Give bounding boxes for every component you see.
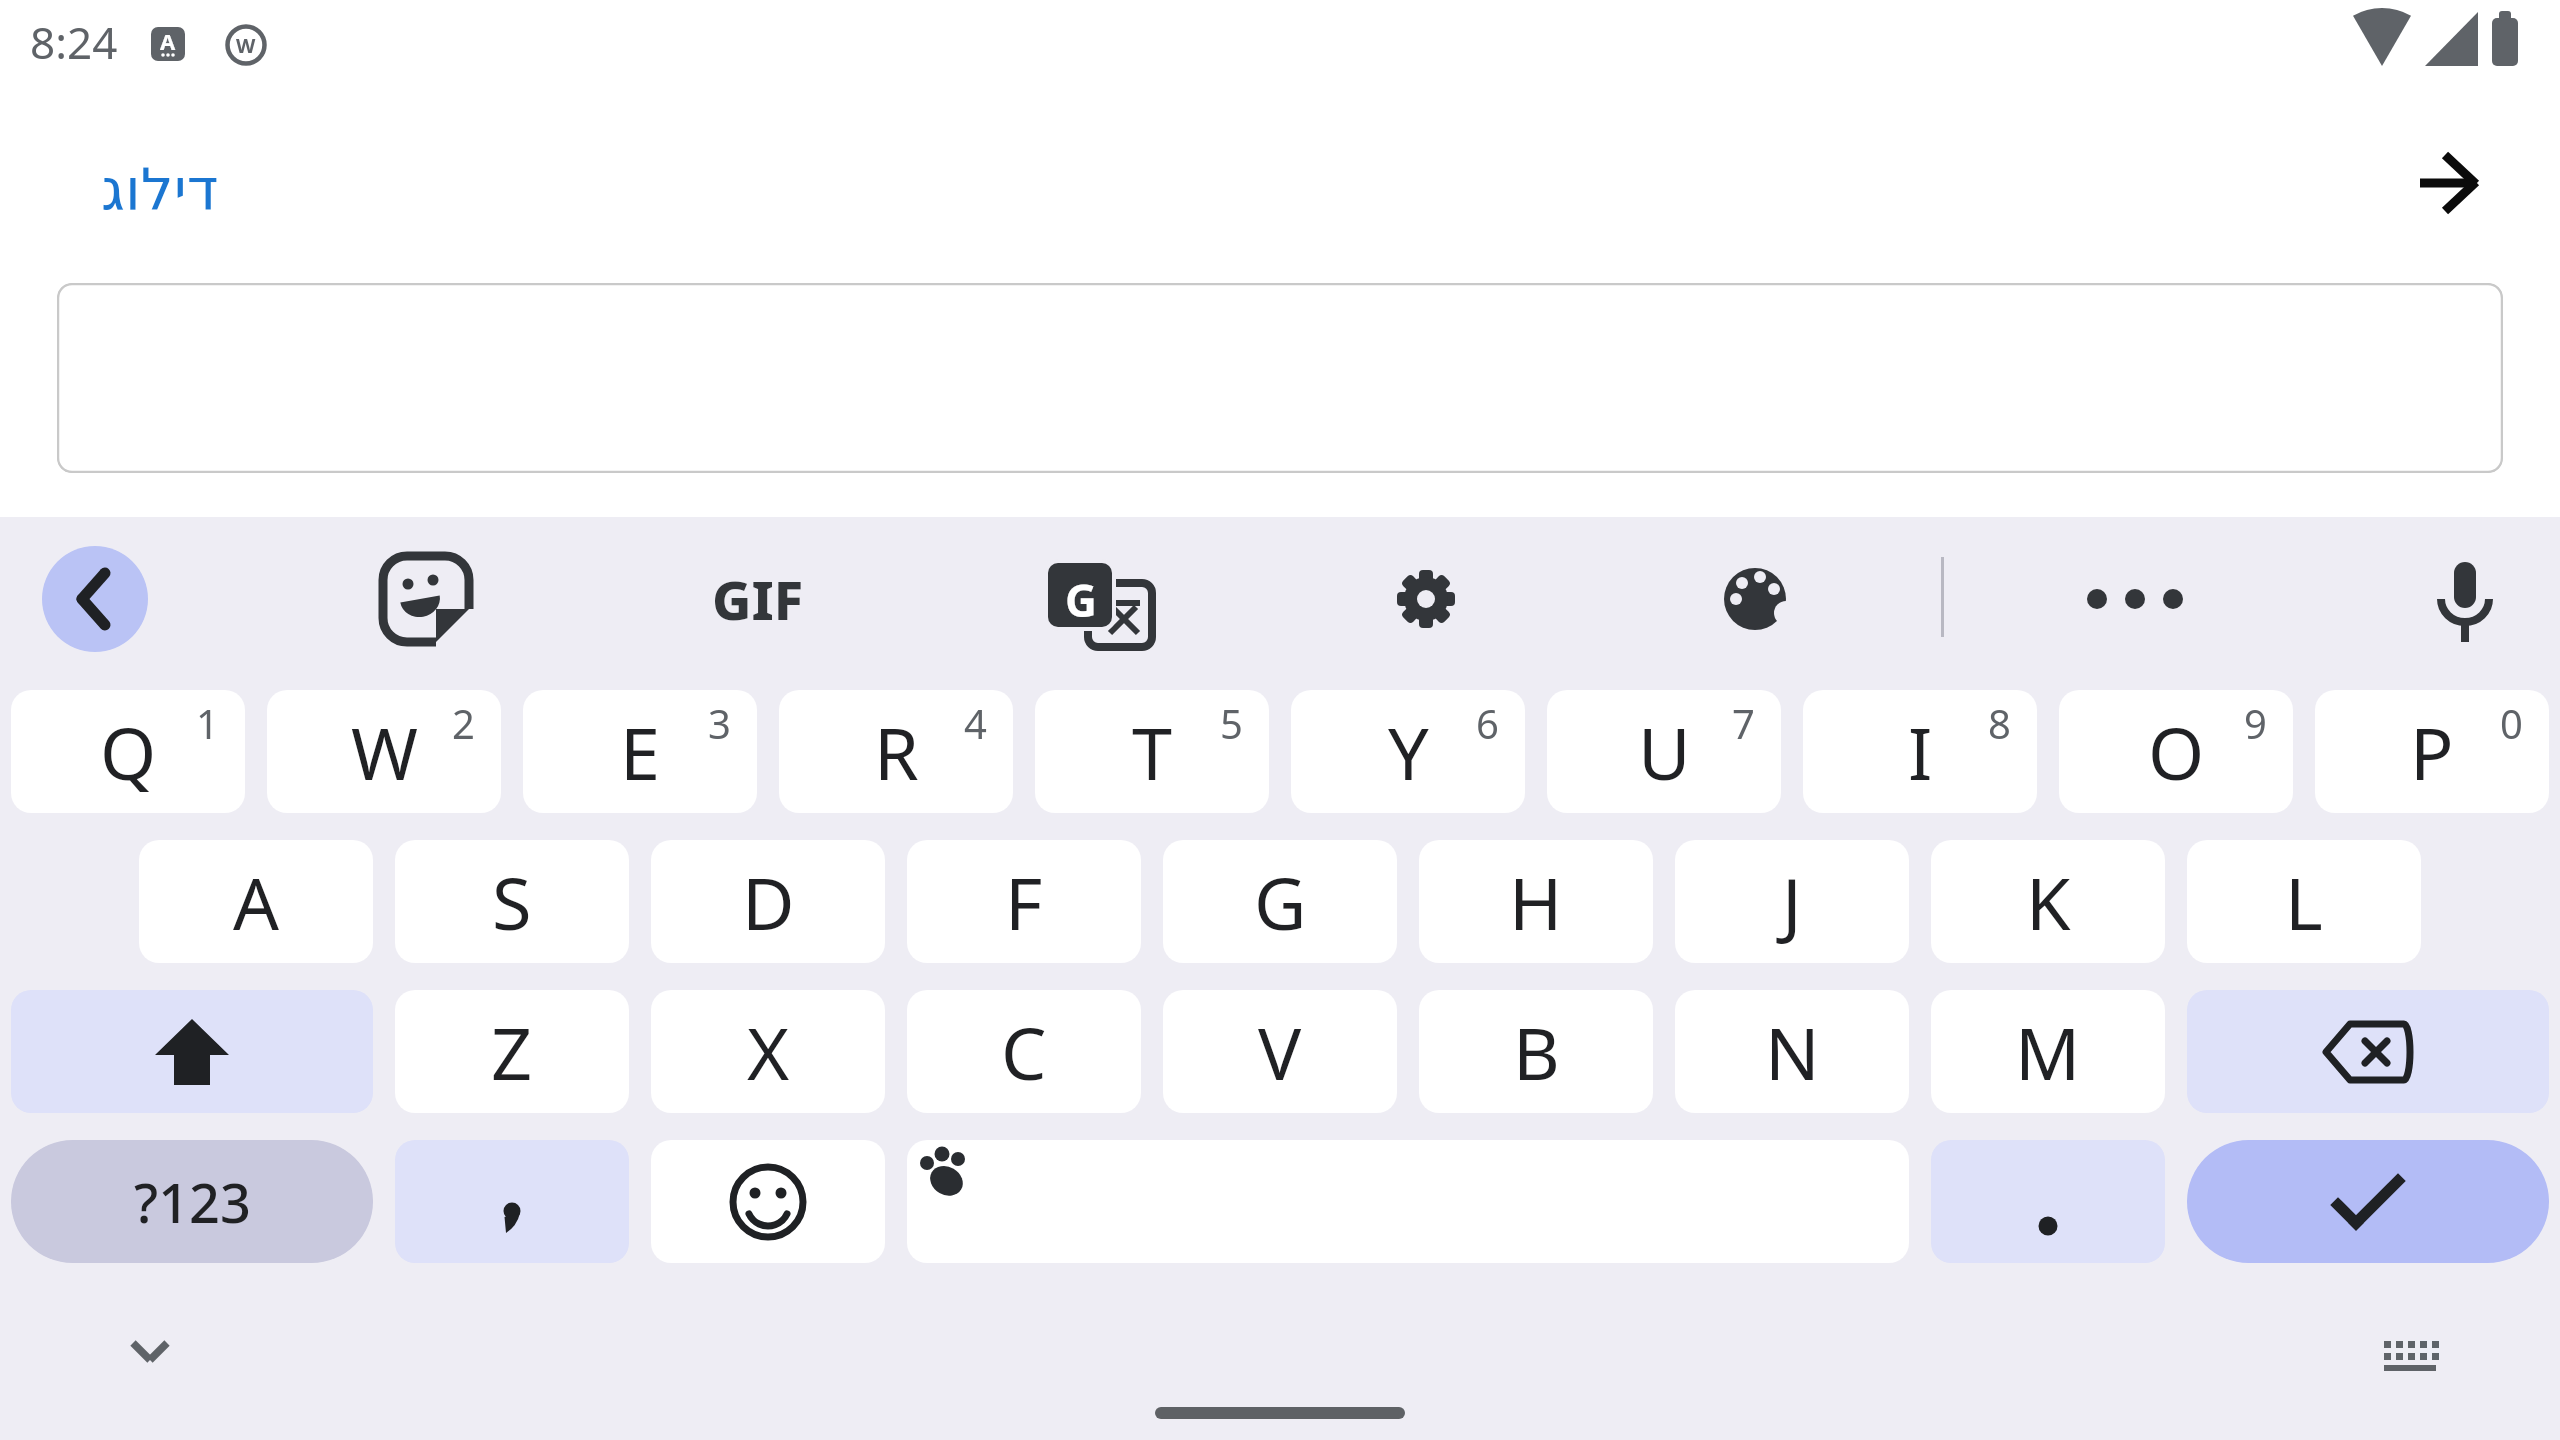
staticText: 4 xyxy=(964,696,987,750)
button[interactable]: A xyxy=(139,840,373,963)
staticText: A xyxy=(233,853,280,951)
staticText: 1 xyxy=(196,696,219,750)
button[interactable]: C xyxy=(907,990,1141,1113)
button[interactable]: X xyxy=(651,990,885,1113)
staticText: L xyxy=(2285,853,2323,951)
button[interactable] xyxy=(2187,990,2549,1113)
button[interactable]: L xyxy=(2187,840,2421,963)
button[interactable]: P xyxy=(2315,690,2549,813)
staticText: 7 xyxy=(1732,696,1755,750)
button[interactable]: S xyxy=(395,840,629,963)
button[interactable]: B xyxy=(1419,990,1653,1113)
button[interactable]: M xyxy=(1931,990,2165,1113)
staticText: O xyxy=(2148,703,2205,801)
staticText: 2 xyxy=(452,696,475,750)
staticText: F xyxy=(1005,853,1043,951)
staticText: M xyxy=(2015,1003,2081,1101)
button[interactable]: U xyxy=(1547,690,1781,813)
staticText: J xyxy=(1782,853,1802,951)
staticText: 9 xyxy=(2244,696,2267,750)
button[interactable]: J xyxy=(1675,840,1909,963)
staticText: 8 xyxy=(1988,696,2011,750)
button[interactable]: T xyxy=(1035,690,1269,813)
staticText: K xyxy=(2026,853,2071,951)
button[interactable] xyxy=(378,551,474,647)
button[interactable] xyxy=(2428,558,2502,658)
button[interactable] xyxy=(907,1140,1909,1263)
button[interactable] xyxy=(42,546,148,652)
staticText: W xyxy=(351,703,418,801)
staticText: R xyxy=(874,703,919,801)
button[interactable]: G xyxy=(1048,563,1158,653)
button[interactable]: O xyxy=(2059,690,2293,813)
staticText: N xyxy=(1765,1003,1820,1101)
staticText: Y xyxy=(1388,703,1429,801)
staticText: 0 xyxy=(2500,696,2523,750)
staticText: 5 xyxy=(1220,696,1243,750)
button[interactable]: K xyxy=(1931,840,2165,963)
button[interactable]: GIF xyxy=(700,554,815,644)
button[interactable]: I xyxy=(1803,690,2037,813)
staticText: ?123 xyxy=(134,1165,251,1239)
button[interactable] xyxy=(1931,1140,2165,1263)
button[interactable] xyxy=(11,990,373,1113)
staticText: U xyxy=(1638,703,1691,801)
button[interactable] xyxy=(105,1315,195,1405)
button[interactable]: H xyxy=(1419,840,1653,963)
staticText: 6 xyxy=(1476,696,1499,750)
button[interactable]: Z xyxy=(395,990,629,1113)
button[interactable]: Y xyxy=(1291,690,1525,813)
button[interactable] xyxy=(2187,1140,2549,1263)
button[interactable] xyxy=(1394,567,1458,631)
staticText: T xyxy=(1132,703,1173,801)
button[interactable]: W xyxy=(267,690,501,813)
button[interactable]: R xyxy=(779,690,1013,813)
staticText: G xyxy=(1065,570,1097,630)
button[interactable]: ?123 xyxy=(11,1140,373,1263)
button[interactable]: F xyxy=(907,840,1141,963)
button[interactable] xyxy=(1722,565,1792,633)
staticText: W xyxy=(236,32,256,59)
button[interactable]: D xyxy=(651,840,885,963)
staticText: A xyxy=(160,27,176,56)
button[interactable]: V xyxy=(1163,990,1397,1113)
staticText: GIF xyxy=(712,562,804,636)
button[interactable] xyxy=(2080,569,2190,629)
button[interactable] xyxy=(651,1140,885,1263)
button[interactable] xyxy=(2395,130,2505,240)
staticText: P xyxy=(2410,703,2454,801)
button[interactable]: N xyxy=(1675,990,1909,1113)
staticText: X xyxy=(747,1003,790,1101)
button[interactable]: דילוג xyxy=(70,140,250,240)
staticText: 8:24 xyxy=(30,12,118,72)
staticText: C xyxy=(1001,1003,1047,1101)
staticText: 3 xyxy=(708,696,731,750)
staticText: I xyxy=(1908,703,1933,801)
button[interactable]: G xyxy=(1163,840,1397,963)
staticText: B xyxy=(1513,1003,1560,1101)
staticText: E xyxy=(620,703,661,801)
staticText: V xyxy=(1258,1003,1302,1101)
staticText: G xyxy=(1254,853,1307,951)
staticText: דילוג xyxy=(101,156,219,224)
button[interactable] xyxy=(395,1140,629,1263)
staticText: Q xyxy=(100,703,157,801)
button[interactable] xyxy=(57,283,2503,473)
staticText: H xyxy=(1509,853,1563,951)
button[interactable]: Q xyxy=(11,690,245,813)
staticText: Z xyxy=(491,1003,533,1101)
button[interactable] xyxy=(2370,1315,2454,1399)
staticText: D xyxy=(742,853,795,951)
staticText: S xyxy=(492,853,532,951)
button[interactable]: E xyxy=(523,690,757,813)
